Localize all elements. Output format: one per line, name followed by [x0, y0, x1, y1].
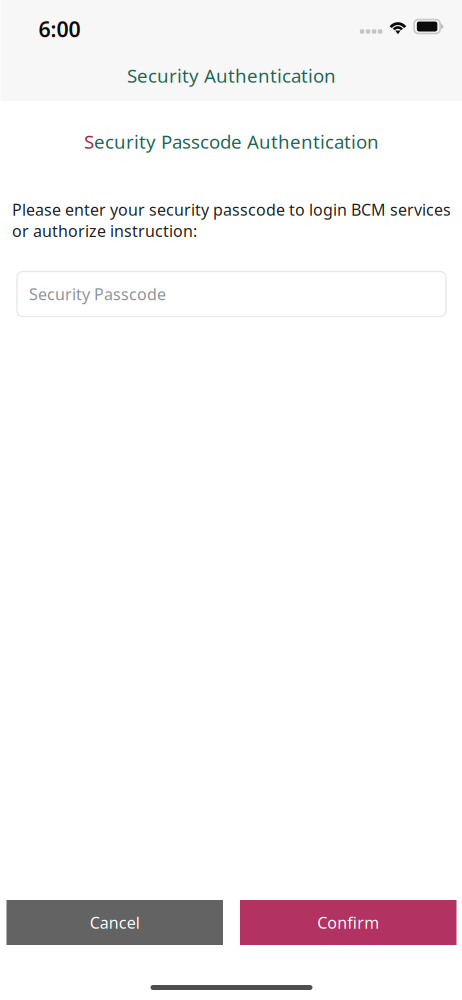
button[interactable]: Cancel: [6, 900, 223, 945]
button[interactable]: Security Passcode: [17, 271, 446, 316]
staticText: Security Authentication: [127, 63, 336, 88]
staticText: ecurity Passcode Authentication: [94, 129, 379, 154]
staticText: Confirm: [317, 912, 379, 933]
staticText: Cancel: [90, 912, 140, 933]
staticText: 6:00: [38, 15, 80, 43]
staticText: Please enter your security passcode to l…: [12, 199, 451, 220]
staticText: S: [84, 129, 94, 154]
button[interactable]: Confirm: [240, 900, 456, 945]
staticText: Security Passcode: [29, 283, 166, 305]
staticText: or authorize instruction:: [12, 220, 197, 241]
